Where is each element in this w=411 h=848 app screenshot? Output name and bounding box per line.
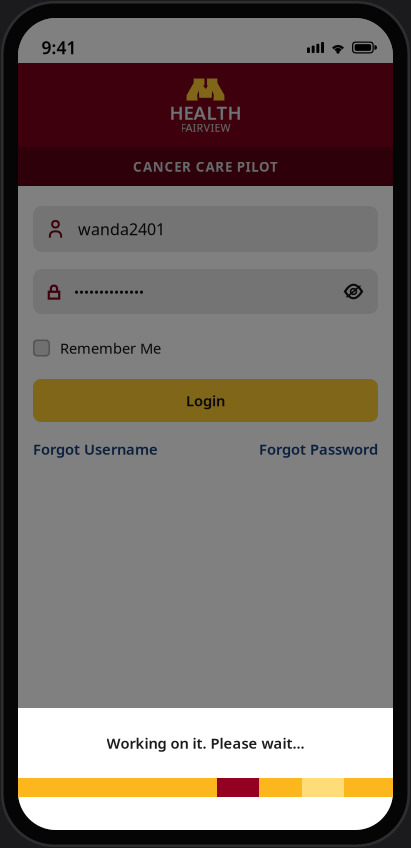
staticText: Working on it. Please wait... [106, 733, 304, 753]
staticText: Forgot Username [33, 439, 158, 459]
button[interactable]: Forgot Password [259, 439, 378, 459]
staticText: CANCER CARE PILOT [133, 158, 278, 175]
button[interactable]: Remember Me [33, 335, 378, 361]
staticText: Login [186, 391, 225, 410]
button[interactable]: wanda2401 [33, 206, 378, 252]
button[interactable]: Login [33, 379, 378, 422]
staticText: 9:41 [41, 36, 76, 59]
staticText: HEALTH [169, 100, 241, 125]
staticText: Forgot Password [259, 439, 378, 459]
button[interactable]: •••••••••••••• [33, 269, 378, 314]
button[interactable]: Forgot Username [33, 439, 158, 459]
staticText: FAIRVIEW [180, 120, 230, 135]
staticText: wanda2401 [78, 218, 165, 240]
staticText: •••••••••••••• [74, 283, 144, 300]
staticText: Remember Me [60, 338, 161, 358]
